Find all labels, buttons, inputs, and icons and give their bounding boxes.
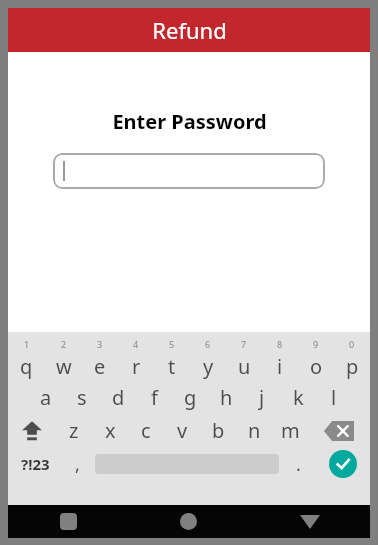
button[interactable]: u bbox=[226, 351, 262, 381]
staticText: c bbox=[141, 417, 151, 444]
staticText: ?!23 bbox=[21, 454, 50, 474]
staticText: 4 bbox=[133, 338, 139, 350]
button[interactable]: x bbox=[92, 414, 128, 447]
button[interactable]: y bbox=[190, 351, 226, 381]
staticText: Enter Password bbox=[112, 108, 267, 135]
button[interactable]: w bbox=[45, 351, 82, 381]
button[interactable]: Home bbox=[128, 505, 249, 538]
button[interactable]: c bbox=[128, 414, 164, 447]
staticText: f bbox=[151, 384, 158, 411]
button[interactable]: h bbox=[208, 381, 244, 414]
button[interactable]: Enter bbox=[315, 447, 370, 481]
button[interactable]: k bbox=[280, 381, 316, 414]
button[interactable]: s bbox=[64, 381, 100, 414]
staticText: 5 bbox=[169, 338, 175, 350]
staticText: r bbox=[132, 353, 141, 380]
staticText: p bbox=[346, 353, 359, 380]
button[interactable]: t bbox=[154, 351, 190, 381]
button[interactable]: Back bbox=[8, 505, 128, 538]
staticText: l bbox=[331, 384, 337, 411]
staticText: 7 bbox=[241, 338, 247, 350]
staticText: z bbox=[69, 417, 79, 444]
button[interactable]: , bbox=[63, 447, 92, 481]
staticText: u bbox=[238, 353, 251, 380]
button[interactable]: l bbox=[316, 381, 352, 414]
staticText: k bbox=[293, 384, 304, 411]
staticText: 3 bbox=[97, 338, 103, 350]
staticText: s bbox=[77, 384, 87, 411]
staticText: o bbox=[310, 353, 323, 380]
staticText: 8 bbox=[277, 338, 283, 350]
button[interactable]: m bbox=[272, 414, 308, 447]
button[interactable]: z bbox=[56, 414, 92, 447]
staticText: a bbox=[40, 384, 52, 411]
staticText: 2 bbox=[61, 338, 67, 350]
button[interactable]: r bbox=[118, 351, 154, 381]
staticText: y bbox=[203, 353, 214, 380]
staticText: g bbox=[184, 384, 197, 411]
staticText: m bbox=[281, 417, 300, 444]
staticText: 6 bbox=[205, 338, 211, 350]
staticText: j bbox=[259, 384, 265, 411]
button[interactable]: Recent apps bbox=[249, 505, 370, 538]
button[interactable]: d bbox=[100, 381, 136, 414]
button[interactable]: q bbox=[8, 351, 45, 381]
staticText: 1 bbox=[24, 338, 30, 350]
staticText: x bbox=[105, 417, 116, 444]
staticText: h bbox=[220, 384, 233, 411]
button[interactable]: i bbox=[262, 351, 298, 381]
button[interactable]: n bbox=[236, 414, 272, 447]
button[interactable]: p bbox=[334, 351, 370, 381]
button[interactable] bbox=[53, 153, 325, 189]
button[interactable]: f bbox=[136, 381, 172, 414]
staticText: b bbox=[212, 417, 225, 444]
button[interactable]: a bbox=[27, 381, 64, 414]
button[interactable]: Shift bbox=[8, 414, 56, 447]
staticText: v bbox=[177, 417, 188, 444]
button[interactable]: v bbox=[164, 414, 200, 447]
button[interactable]: o bbox=[298, 351, 334, 381]
staticText: Refund bbox=[152, 15, 227, 45]
staticText: t bbox=[168, 353, 176, 380]
staticText: d bbox=[112, 384, 125, 411]
staticText: w bbox=[56, 353, 72, 380]
staticText: i bbox=[277, 353, 283, 380]
button[interactable]: Backspace bbox=[308, 414, 370, 447]
staticText: n bbox=[248, 417, 261, 444]
staticText: q bbox=[20, 353, 33, 380]
staticText: . bbox=[296, 452, 301, 477]
staticText: 0 bbox=[349, 338, 355, 350]
staticText: 9 bbox=[313, 338, 319, 350]
button[interactable]: j bbox=[244, 381, 280, 414]
button[interactable]: . bbox=[282, 447, 315, 481]
button[interactable]: ?!23 bbox=[8, 447, 63, 481]
button[interactable]: g bbox=[172, 381, 208, 414]
button[interactable]: b bbox=[200, 414, 236, 447]
button[interactable]: e bbox=[82, 351, 118, 381]
staticText: e bbox=[94, 353, 106, 380]
staticText: , bbox=[75, 452, 80, 477]
